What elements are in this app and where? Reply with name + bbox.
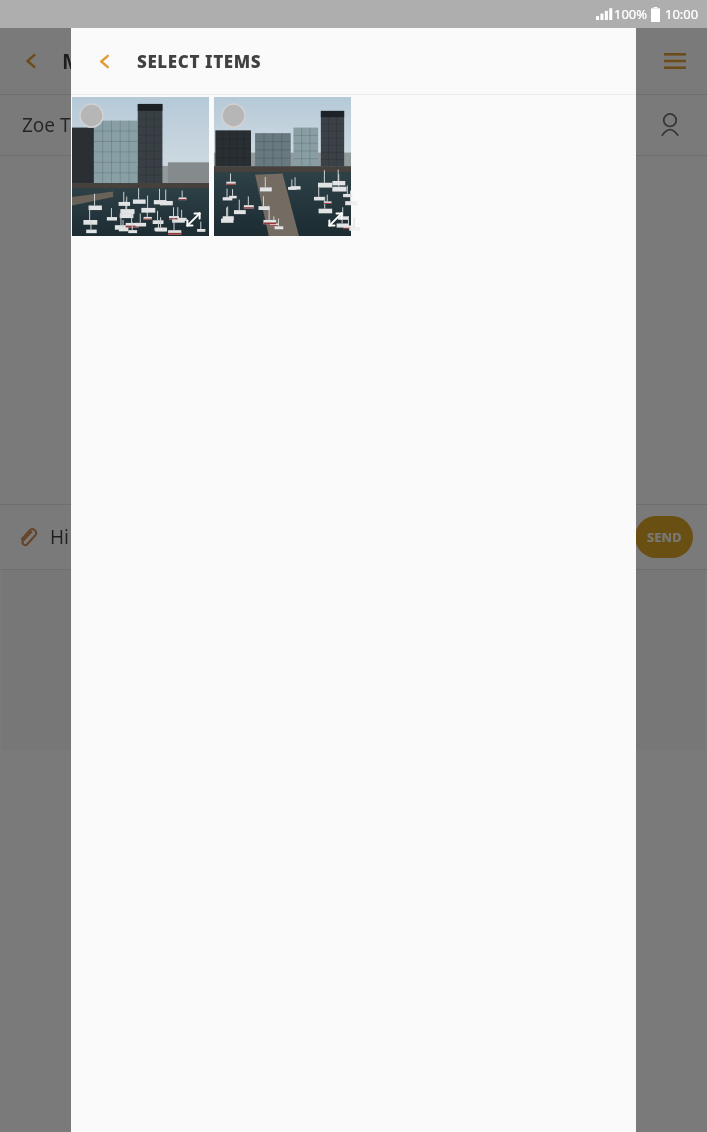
staticText: SEND bbox=[647, 528, 682, 546]
staticText: Messages bbox=[62, 47, 165, 76]
staticText: SELECT ITEMS bbox=[137, 50, 262, 73]
staticText: 10:00 bbox=[665, 5, 699, 23]
button[interactable]: Attach bbox=[6, 516, 48, 558]
button[interactable]: Back bbox=[83, 39, 127, 83]
button[interactable]: Photo bbox=[72, 97, 209, 236]
staticText: Zoe Thompson bbox=[22, 112, 156, 138]
button[interactable]: Insert bbox=[2, 570, 705, 750]
button[interactable]: Expand bbox=[327, 211, 344, 228]
button[interactable]: Zoe Thompson bbox=[0, 95, 707, 155]
button[interactable]: Back bbox=[10, 39, 54, 83]
staticText: Hi there bbox=[50, 524, 122, 550]
button[interactable]: Photo bbox=[214, 97, 351, 236]
button[interactable]: Menu bbox=[653, 39, 697, 83]
button[interactable]: Expand bbox=[185, 211, 202, 228]
button[interactable]: SEND bbox=[635, 516, 693, 558]
staticText: 100% bbox=[614, 5, 648, 23]
button[interactable]: Contacts bbox=[647, 102, 693, 148]
